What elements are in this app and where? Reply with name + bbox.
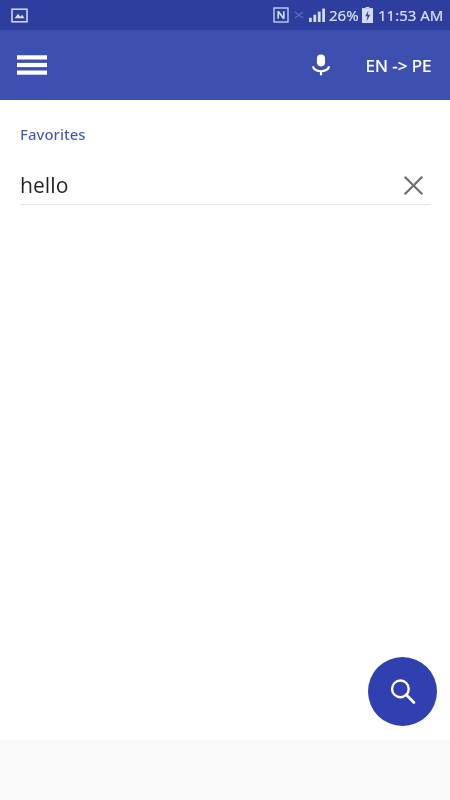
staticText: 26% [329, 5, 359, 25]
staticText: EN -> PE [365, 54, 432, 77]
button[interactable]: Search [368, 657, 437, 726]
button[interactable]: hello [20, 166, 430, 204]
staticText: 11:53 AM [378, 5, 444, 25]
staticText: Favorites [20, 124, 86, 144]
button[interactable]: Voice input [297, 41, 345, 89]
staticText: hello [20, 171, 396, 200]
button[interactable]: EN -> PE [353, 44, 444, 87]
button[interactable]: Clear text [396, 168, 430, 202]
button[interactable]: Open navigation menu [8, 41, 56, 89]
